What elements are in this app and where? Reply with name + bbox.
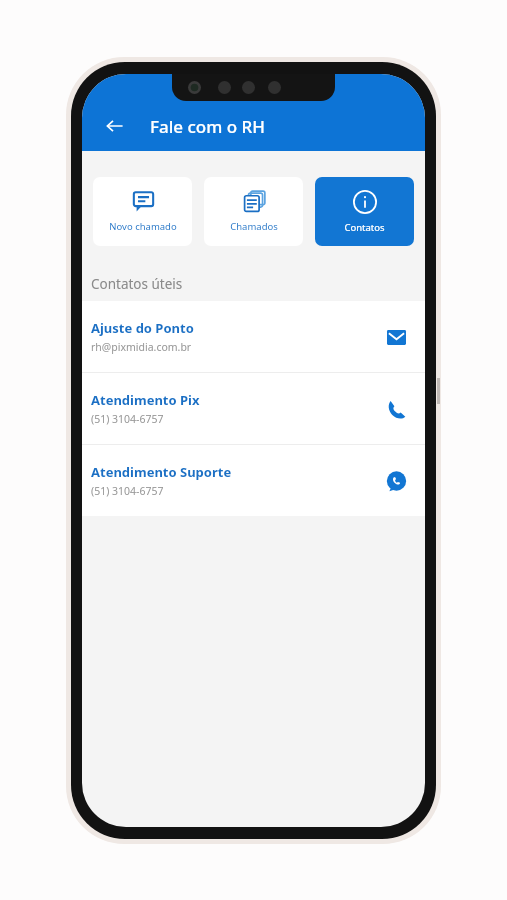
staticText: Novo chamado: [109, 220, 177, 233]
button[interactable]: [381, 322, 411, 352]
staticText: Atendimento Pix: [91, 391, 200, 409]
button[interactable]: [381, 466, 411, 496]
staticText: Chamados: [230, 220, 278, 233]
staticText: rh@pixmidia.com.br: [91, 340, 192, 354]
staticText: Atendimento Suporte: [91, 463, 232, 481]
button[interactable]: [381, 394, 411, 424]
staticText: Contatos: [344, 221, 385, 234]
button[interactable]: Atendimento Pix: [82, 373, 425, 444]
staticText: Contatos úteis: [91, 275, 183, 293]
staticText: (51) 3104-6757: [91, 484, 164, 498]
button[interactable]: Atendimento Suporte: [82, 445, 425, 516]
staticText: Ajuste do Ponto: [91, 319, 194, 337]
staticText: Fale com o RH: [150, 115, 265, 138]
button[interactable]: Novo chamado: [93, 177, 192, 246]
button[interactable]: Back: [96, 107, 134, 145]
staticText: (51) 3104-6757: [91, 412, 164, 426]
button[interactable]: Ajuste do Ponto: [82, 301, 425, 372]
button[interactable]: Chamados: [204, 177, 303, 246]
button[interactable]: Contatos: [315, 177, 414, 246]
